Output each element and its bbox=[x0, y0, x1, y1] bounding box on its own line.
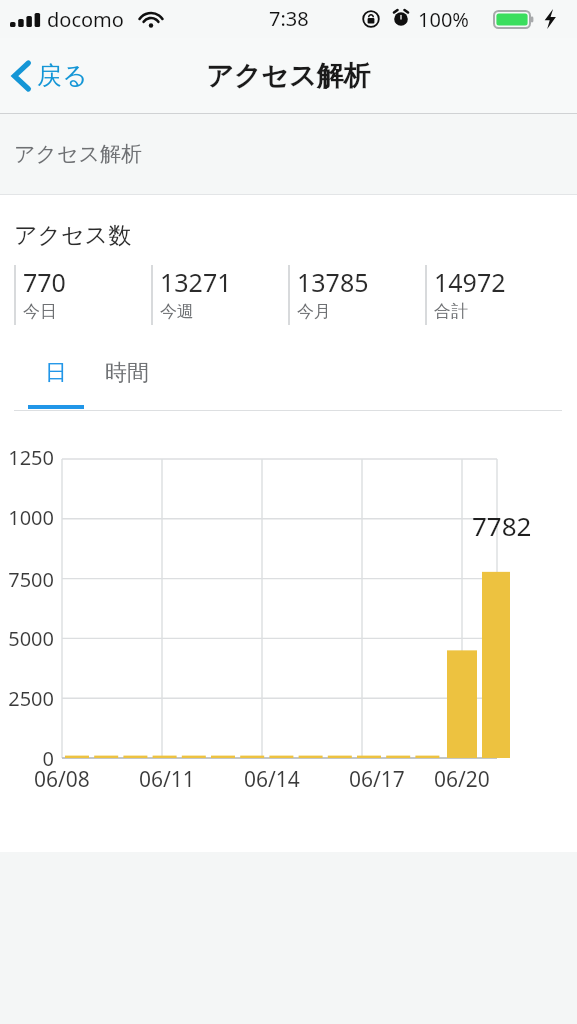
staticText: 日 bbox=[45, 359, 67, 387]
staticText: 今月 bbox=[297, 301, 331, 322]
staticText: 13785 bbox=[297, 265, 369, 299]
staticText: 12500 bbox=[0, 444, 54, 474]
button[interactable]: 日 bbox=[28, 355, 84, 409]
staticText: 今週 bbox=[160, 301, 194, 322]
staticText: 今日 bbox=[23, 301, 57, 322]
staticText: 14972 bbox=[434, 265, 506, 299]
staticText: アクセス解析 bbox=[206, 59, 371, 93]
staticText: 06/08 bbox=[34, 765, 90, 794]
staticText: 770 bbox=[23, 265, 66, 299]
staticText: 13271 bbox=[160, 265, 232, 299]
button[interactable]: 戻る bbox=[0, 52, 102, 99]
button[interactable]: 13785 bbox=[288, 265, 369, 327]
staticText: 合計 bbox=[434, 301, 468, 322]
staticText: 5000 bbox=[8, 625, 54, 652]
staticText: アクセス解析 bbox=[14, 141, 142, 167]
staticText: 06/14 bbox=[244, 765, 300, 794]
staticText: 0 bbox=[42, 745, 54, 772]
staticText: 100% bbox=[418, 6, 469, 33]
staticText: 7500 bbox=[8, 566, 54, 593]
staticText: 06/17 bbox=[349, 765, 405, 794]
button[interactable]: 13271 bbox=[151, 265, 232, 327]
button[interactable]: 時間 bbox=[88, 355, 166, 409]
staticText: 7782 bbox=[472, 508, 532, 543]
staticText: docomo bbox=[47, 6, 124, 33]
staticText: 時間 bbox=[105, 359, 149, 387]
staticText: 2500 bbox=[8, 685, 54, 712]
staticText: 10000 bbox=[0, 504, 54, 534]
staticText: 06/11 bbox=[139, 765, 195, 794]
staticText: 06/20 bbox=[434, 765, 490, 794]
staticText: 戻る bbox=[37, 60, 88, 91]
staticText: アクセス数 bbox=[14, 221, 132, 250]
button[interactable]: 14972 bbox=[425, 265, 506, 327]
staticText: 7:38 bbox=[269, 5, 309, 32]
button[interactable]: 770 bbox=[14, 265, 66, 327]
